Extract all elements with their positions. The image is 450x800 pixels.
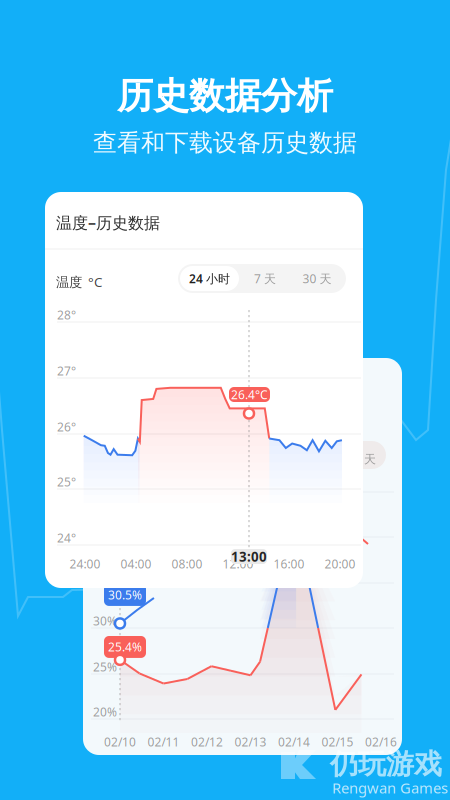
staticText: 12:00 bbox=[222, 556, 253, 572]
button[interactable]: 24 小时 bbox=[180, 266, 239, 291]
staticText: 25.4% bbox=[108, 639, 142, 655]
staticText: 24° bbox=[57, 530, 76, 546]
staticText: 13:00 bbox=[231, 548, 267, 565]
button[interactable]: 7 天 bbox=[240, 266, 290, 291]
staticText: 天 bbox=[364, 452, 376, 467]
staticText: 25° bbox=[57, 474, 76, 490]
staticText: 20:00 bbox=[324, 556, 355, 572]
staticText: 04:00 bbox=[120, 556, 151, 572]
staticText: 02/15 bbox=[321, 734, 353, 750]
staticText: 仍玩游戏 bbox=[330, 747, 442, 781]
staticText: 历史数据分析 bbox=[117, 74, 333, 118]
staticText: 02/14 bbox=[278, 734, 310, 750]
staticText: 26.4°C bbox=[231, 386, 268, 402]
staticText: 02/16 bbox=[365, 734, 397, 750]
staticText: 24 小时 bbox=[189, 270, 230, 286]
staticText: 25% bbox=[93, 659, 117, 675]
staticText: 16:00 bbox=[273, 556, 304, 572]
staticText: 08:00 bbox=[171, 556, 202, 572]
staticText: 26° bbox=[57, 419, 76, 435]
staticText: 28° bbox=[57, 307, 76, 323]
staticText: 温度 °C bbox=[56, 273, 102, 291]
staticText: 30.5% bbox=[108, 587, 142, 603]
staticText: 7 天 bbox=[254, 270, 276, 286]
staticText: 24:00 bbox=[69, 556, 100, 572]
staticText: 30% bbox=[93, 613, 117, 629]
staticText: 02/11 bbox=[147, 734, 179, 750]
staticText: 02/10 bbox=[104, 734, 136, 750]
staticText: 30 天 bbox=[302, 270, 331, 286]
staticText: 27° bbox=[57, 363, 76, 379]
staticText: 查看和下载设备历史数据 bbox=[93, 128, 357, 157]
staticText: Rengwan Games bbox=[332, 778, 448, 797]
staticText: 02/12 bbox=[191, 734, 223, 750]
staticText: 02/13 bbox=[234, 734, 266, 750]
button[interactable]: 30 天 bbox=[290, 266, 344, 291]
staticText: 20% bbox=[93, 704, 117, 720]
staticText: 温度–历史数据 bbox=[56, 212, 160, 233]
